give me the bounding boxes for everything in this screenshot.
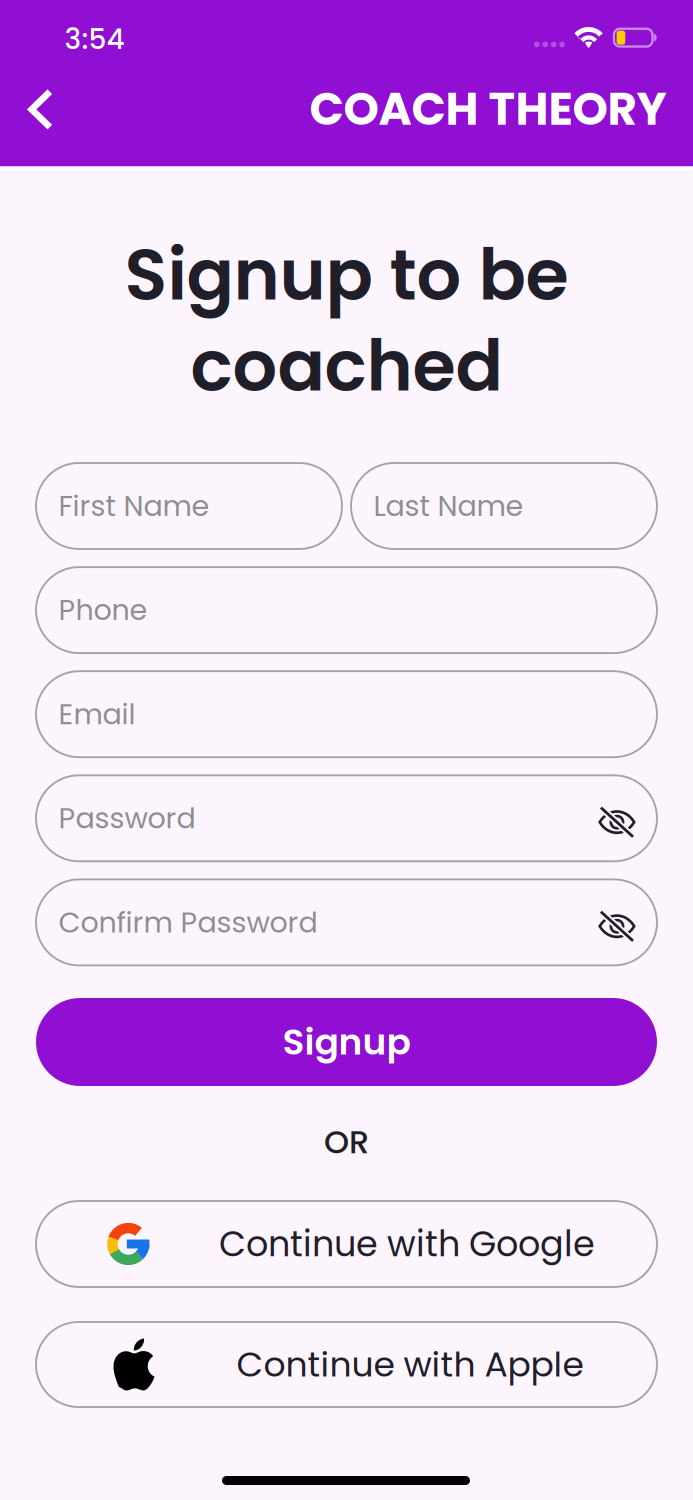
button[interactable]: Back (2, 70, 80, 148)
button[interactable]: Confirm Password (36, 879, 657, 965)
staticText: Phone (58, 590, 147, 630)
button[interactable]: Show password (598, 806, 636, 838)
button[interactable]: Password (36, 775, 657, 861)
staticText: Last Name (373, 486, 523, 526)
button[interactable]: Continue with Apple (36, 1322, 657, 1407)
staticText: COACH THEORY (309, 77, 666, 140)
staticText: Email (58, 694, 135, 734)
staticText: Continue with Google (219, 1219, 595, 1268)
staticText: First Name (58, 486, 209, 526)
staticText: Confirm Password (58, 902, 317, 942)
button[interactable]: First Name (36, 463, 342, 549)
staticText: OR (324, 1120, 369, 1164)
staticText: Signup (282, 1017, 410, 1067)
staticText: 3:54 (64, 19, 124, 59)
staticText: coached (190, 317, 502, 415)
button[interactable]: Last Name (351, 463, 657, 549)
button[interactable]: Continue with Google (36, 1201, 657, 1287)
button[interactable]: Email (36, 671, 657, 757)
staticText: Password (58, 798, 195, 838)
button[interactable]: Show password (598, 910, 636, 942)
staticText: Continue with Apple (236, 1340, 583, 1389)
button[interactable]: Phone (36, 567, 657, 653)
staticText: Signup to be (124, 226, 568, 324)
button[interactable]: Signup (36, 998, 657, 1086)
